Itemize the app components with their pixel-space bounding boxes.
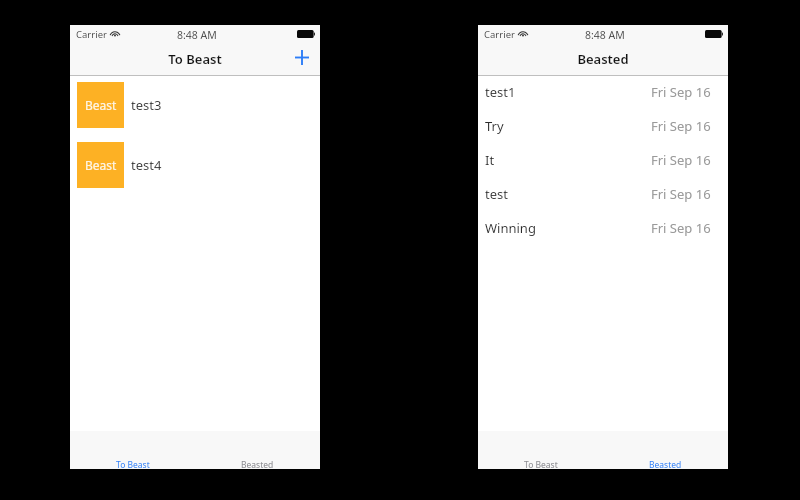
staticText: It [485,151,495,169]
staticText: Beast [85,157,117,173]
staticText: Winning [485,219,536,237]
other: Battery full [705,30,723,38]
staticText: Fri Sep 16 [651,117,711,135]
staticText: Beasted [649,459,682,471]
staticText: Fri Sep 16 [651,185,711,203]
button[interactable]: test1 [478,75,728,109]
staticText: test3 [131,96,162,114]
staticText: Fri Sep 16 [651,151,711,169]
staticText: Beasted [478,50,728,68]
button[interactable]: test [478,177,728,211]
other: Battery full [297,30,315,38]
button[interactable]: Beasted [195,431,320,469]
button[interactable]: Add item [287,43,316,72]
button[interactable]: Beast [70,135,320,195]
staticText: Carrier [484,28,515,41]
button[interactable]: Try [478,109,728,143]
button[interactable]: To Beast [70,431,195,469]
staticText: To Beast [70,50,320,68]
button[interactable]: Beasted [603,431,728,469]
button[interactable]: Winning [478,211,728,245]
button[interactable]: It [478,143,728,177]
staticText: To Beast [116,459,150,471]
staticText: 8:48 AM [585,28,625,42]
other: Wi-Fi [518,29,528,37]
other: Wi-Fi [110,29,120,37]
staticText: 8:48 AM [177,28,217,42]
staticText: test1 [485,83,516,101]
staticText: Beasted [241,459,274,471]
staticText: test [485,185,508,203]
staticText: To Beast [524,459,558,471]
staticText: test4 [131,156,162,174]
staticText: Fri Sep 16 [651,83,711,101]
staticText: Beast [85,97,117,113]
button[interactable]: To Beast [478,431,603,469]
button[interactable]: Beast [70,75,320,135]
staticText: Fri Sep 16 [651,219,711,237]
staticText: Try [485,117,504,135]
staticText: Carrier [76,28,107,41]
